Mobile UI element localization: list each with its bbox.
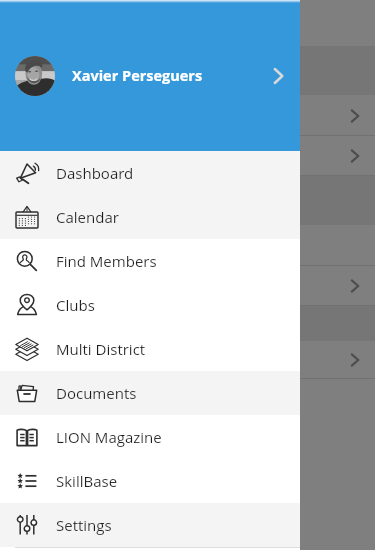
- button[interactable]: Documents: [0, 371, 300, 415]
- button[interactable]: Multi District: [0, 327, 300, 371]
- staticText: Dashboard: [56, 163, 134, 183]
- button[interactable]: [0, 176, 375, 225]
- button[interactable]: [0, 136, 375, 176]
- button[interactable]: [0, 95, 375, 136]
- button[interactable]: [0, 46, 375, 95]
- button[interactable]: Calendar: [0, 195, 300, 239]
- button[interactable]: [0, 225, 375, 266]
- button[interactable]: Settings: [0, 503, 300, 547]
- button[interactable]: [0, 0, 375, 46]
- button[interactable]: Dashboard: [0, 151, 300, 195]
- button[interactable]: Find Members: [0, 239, 300, 283]
- button[interactable]: [0, 341, 375, 379]
- staticText: Calendar: [56, 207, 119, 227]
- staticText: Xavier Perseguers: [72, 66, 203, 86]
- button[interactable]: SkillBase: [0, 459, 300, 503]
- other: Profile: [270, 66, 290, 86]
- staticText: Multi District: [56, 339, 146, 359]
- button[interactable]: Xavier Perseguers: [0, 0, 300, 151]
- staticText: Find Members: [56, 251, 157, 271]
- staticText: SkillBase: [56, 471, 118, 491]
- staticText: Settings: [56, 515, 112, 535]
- button[interactable]: Clubs: [0, 283, 300, 327]
- button[interactable]: LION Magazine: [0, 415, 300, 459]
- staticText: Documents: [56, 383, 137, 403]
- staticText: LION Magazine: [56, 427, 162, 447]
- button[interactable]: [0, 266, 375, 306]
- staticText: Clubs: [56, 295, 95, 315]
- button[interactable]: [0, 306, 375, 341]
